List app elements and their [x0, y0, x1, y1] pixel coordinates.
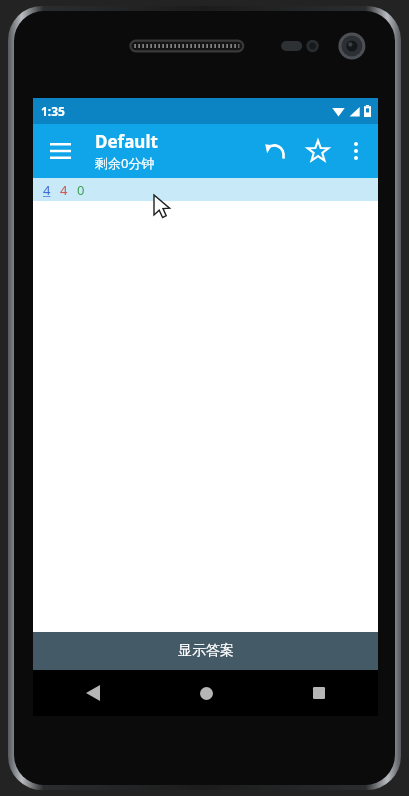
button[interactable]: Recent apps: [292, 670, 346, 716]
button[interactable]: Undo: [254, 124, 296, 178]
button[interactable]: 4: [33, 178, 378, 201]
button[interactable]: More options: [340, 124, 372, 178]
button[interactable]: Favorite: [296, 124, 340, 178]
button[interactable]: 显示答案: [33, 632, 378, 670]
staticText: 剩余0分钟: [95, 154, 155, 172]
staticText: Default: [95, 130, 158, 153]
staticText: 4: [43, 181, 51, 199]
staticText: 4: [60, 181, 68, 199]
staticText: 0: [77, 181, 85, 199]
button[interactable]: Home: [179, 670, 233, 716]
staticText: 1:35: [41, 103, 65, 119]
button[interactable]: Open navigation drawer: [33, 124, 87, 178]
staticText: 显示答案: [178, 642, 234, 660]
button[interactable]: Back: [66, 670, 120, 716]
